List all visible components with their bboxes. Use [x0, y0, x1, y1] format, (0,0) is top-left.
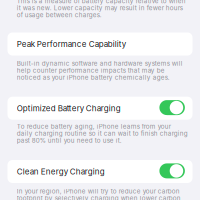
button[interactable]: Clean Energy Charging [7, 160, 192, 183]
staticText: In your region, iPhone will try to reduc… [17, 187, 181, 200]
staticText: Clean Energy Charging [17, 167, 105, 176]
button[interactable]: Peak Performance Capability [7, 32, 192, 55]
button[interactable]: Optimized Battery Charging [7, 97, 192, 120]
staticText: Built-in dynamic software and hardware s… [17, 60, 183, 81]
staticText: Peak Performance Capability [17, 39, 126, 49]
staticText: Optimized Battery Charging [17, 103, 121, 113]
staticText: This is a measure of battery capacity re… [17, 0, 186, 19]
staticText: To reduce battery aging, iPhone learns f… [17, 123, 188, 144]
